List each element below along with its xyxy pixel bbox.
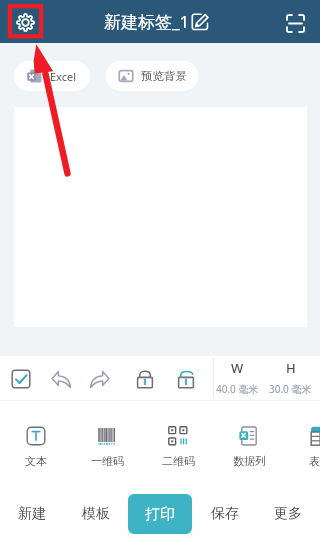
button[interactable]: 新建 [4, 494, 60, 534]
button[interactable]: 二维码 [144, 426, 212, 468]
staticText: 更多 [274, 505, 302, 523]
button[interactable]: 打印 [128, 494, 192, 534]
button[interactable]: Redo [83, 362, 117, 396]
button[interactable]: 文本 [2, 426, 70, 468]
staticText: 二维码 [162, 454, 195, 468]
staticText: 40.0 毫米 [216, 382, 259, 396]
button[interactable]: Scan [281, 9, 310, 38]
button[interactable]: 一维码 [73, 426, 141, 468]
button[interactable]: Undo [44, 362, 78, 396]
button[interactable]: 模板 [68, 494, 124, 534]
staticText: 数据列 [233, 454, 266, 468]
staticText: Excel [50, 69, 77, 84]
button[interactable]: Unlock [169, 362, 203, 396]
staticText: 预览背景 [141, 69, 187, 83]
staticText: 新建 [18, 505, 46, 523]
staticText: 一维码 [91, 454, 124, 468]
button[interactable]: Excel [14, 61, 90, 91]
staticText: 30.0 毫米 [269, 382, 312, 396]
button[interactable]: Rename label [189, 11, 210, 32]
button[interactable]: Select all [4, 362, 38, 396]
button[interactable]: W [211, 356, 264, 396]
button[interactable]: Settings [10, 7, 40, 37]
staticText: 模板 [82, 505, 110, 523]
button[interactable]: 更多 [260, 494, 316, 534]
staticText: W [231, 359, 244, 377]
button[interactable]: 保存 [197, 494, 253, 534]
button[interactable]: 预览背景 [106, 61, 198, 91]
staticText: 新建标签_1 [104, 10, 190, 33]
button[interactable]: 数据列 [215, 426, 283, 468]
button[interactable]: Lock [128, 362, 162, 396]
staticText: H [286, 359, 296, 377]
staticText: 表格 [309, 454, 320, 468]
button[interactable]: H [264, 356, 317, 396]
button[interactable]: 表格 [286, 426, 320, 468]
staticText: 打印 [145, 505, 175, 524]
staticText: 文本 [25, 454, 47, 468]
staticText: 保存 [211, 505, 239, 523]
